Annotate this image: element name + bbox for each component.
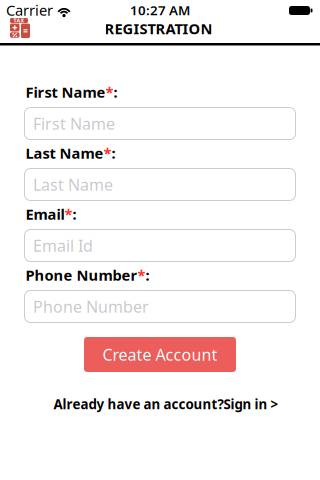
staticText: * <box>137 265 145 285</box>
button[interactable]: Already have an account? <box>53 395 278 413</box>
staticText: Phone Number <box>33 296 149 317</box>
staticText: Carrier <box>6 0 53 20</box>
button[interactable]: Last Name <box>24 168 296 201</box>
staticText: : <box>113 82 117 102</box>
staticText: : <box>72 204 76 224</box>
button[interactable]: Phone Number <box>24 290 296 323</box>
staticText: REGISTRATION <box>104 19 212 38</box>
staticText: 10:27 AM <box>130 1 190 19</box>
staticText: * <box>103 143 111 163</box>
staticText: * <box>105 82 113 102</box>
staticText: : <box>111 143 115 163</box>
staticText: Sign in > <box>223 395 278 413</box>
staticText: Last Name <box>33 174 113 195</box>
staticText: : <box>145 265 149 285</box>
staticText: Create Account <box>102 344 217 365</box>
staticText: Email Id <box>33 235 93 256</box>
staticText: First Name <box>33 113 115 134</box>
staticText: Email <box>25 204 64 224</box>
button[interactable]: Create Account <box>84 337 236 372</box>
staticText: First Name <box>25 82 105 102</box>
staticText: Last Name <box>25 143 103 163</box>
button[interactable]: First Name <box>24 107 296 140</box>
staticText: * <box>64 204 72 224</box>
staticText: TAX <box>13 17 24 24</box>
staticText: Phone Number <box>25 265 137 285</box>
staticText: Already have an account? <box>53 395 223 413</box>
button[interactable]: Email Id <box>24 229 296 262</box>
